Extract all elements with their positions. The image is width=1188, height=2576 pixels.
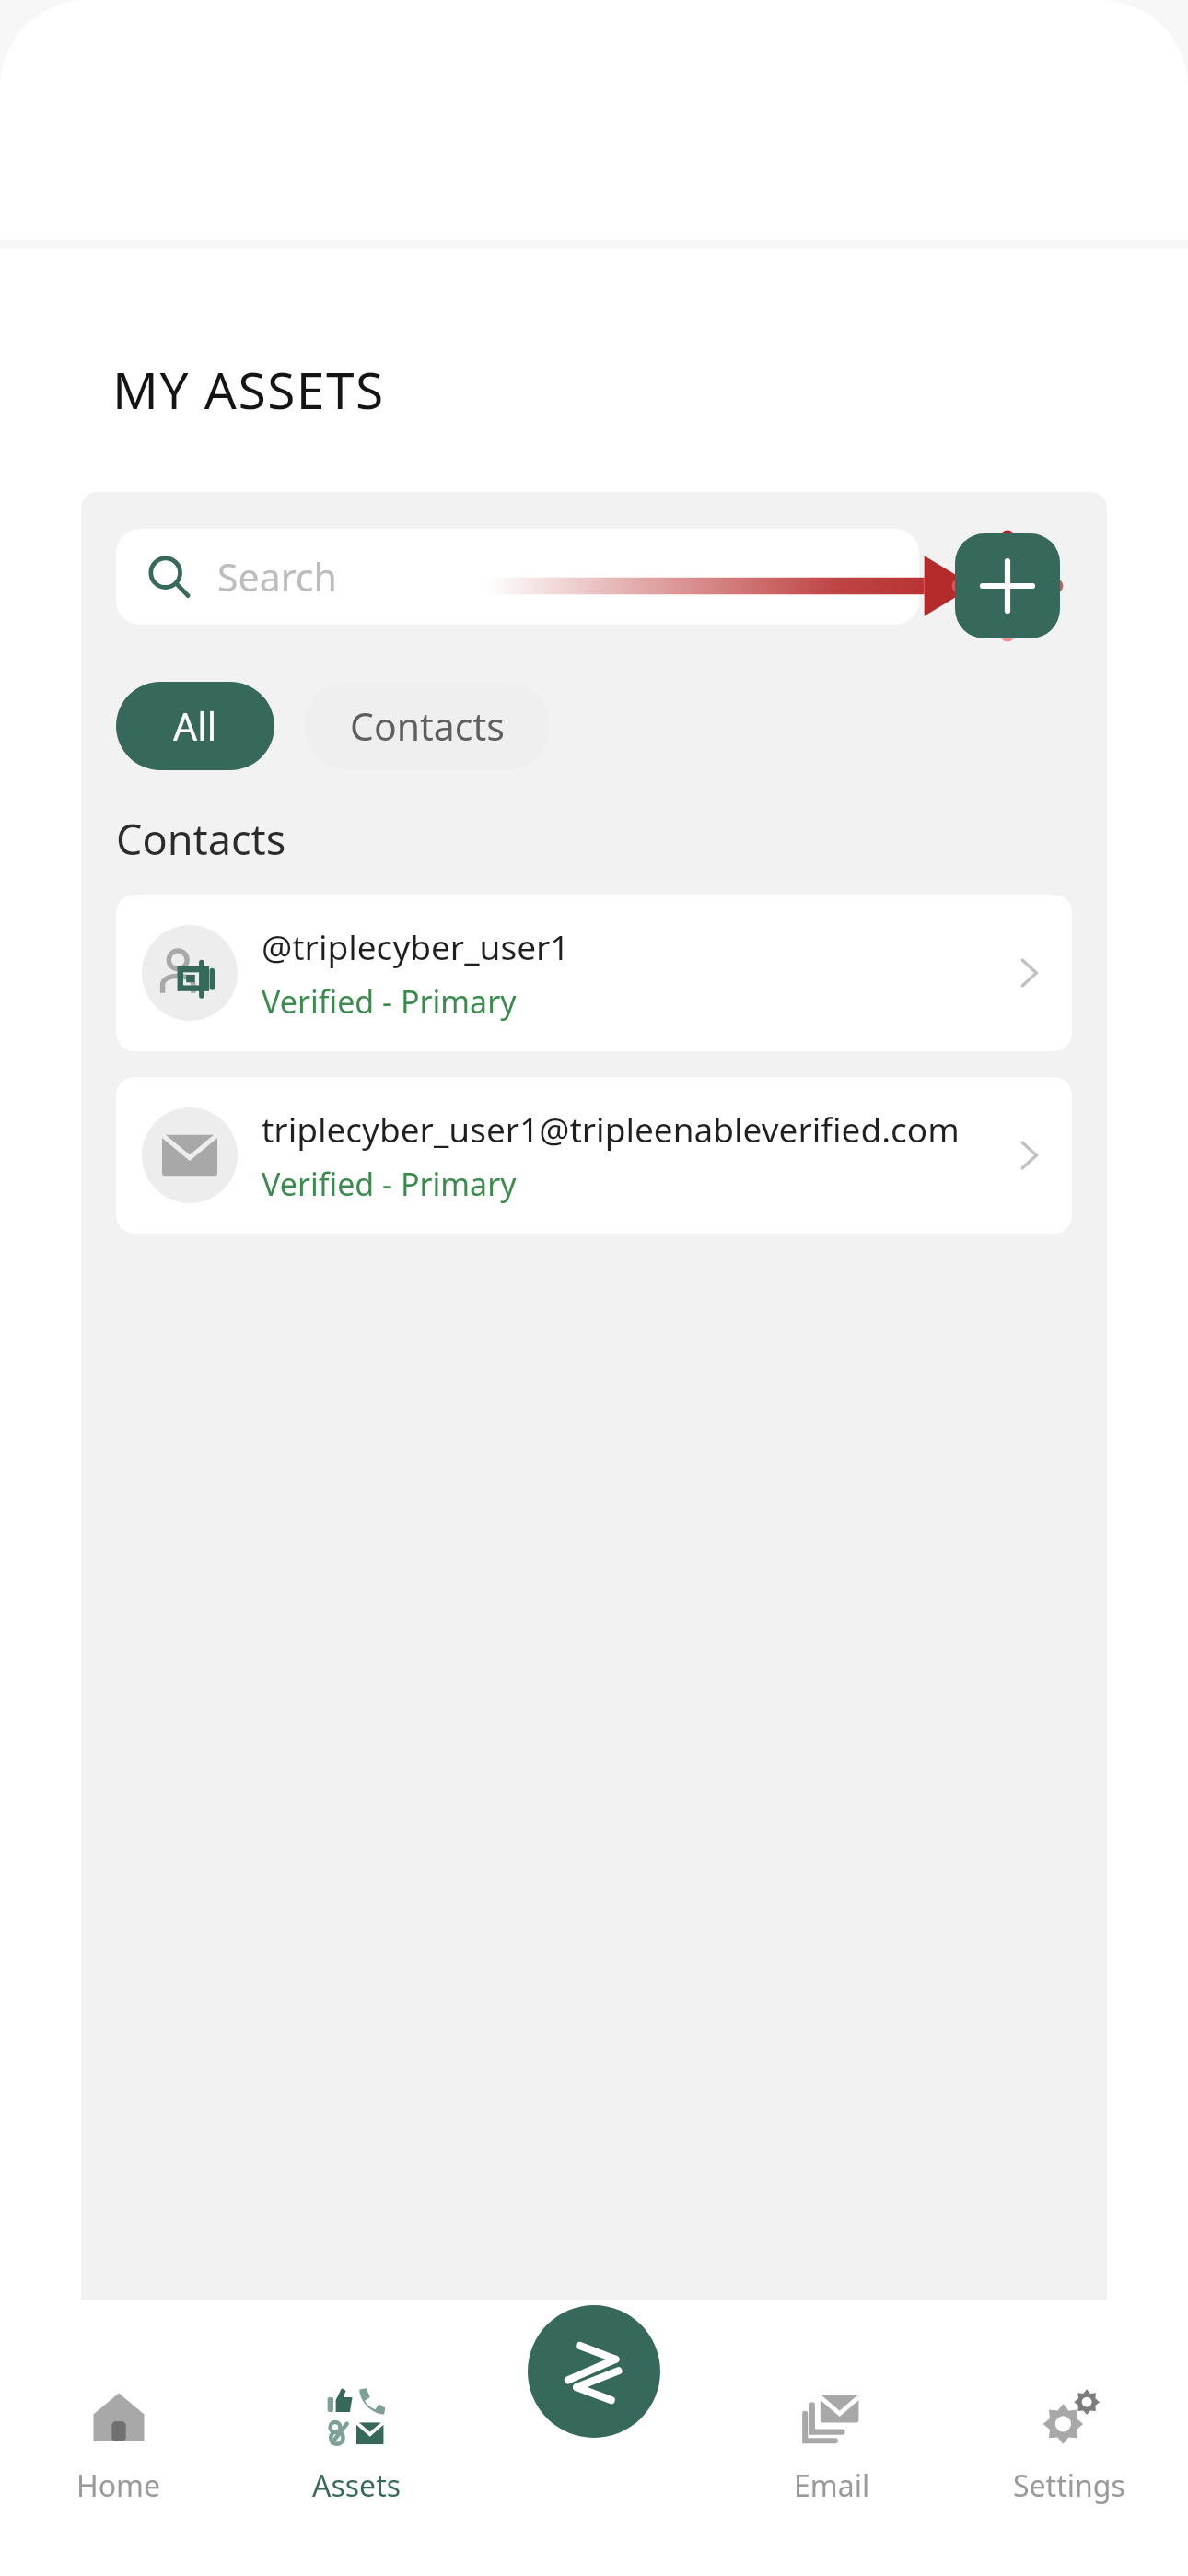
- button[interactable]: Contacts: [304, 682, 551, 770]
- button[interactable]: Add asset: [955, 533, 1060, 638]
- button[interactable]: Home: [0, 2375, 238, 2512]
- staticText: @triplecyber_user1: [262, 923, 570, 969]
- button[interactable]: Email: [713, 2375, 950, 2512]
- staticText: triplecyber_user1@tripleenableverified.c…: [262, 1106, 960, 1152]
- button[interactable]: triplecyber_user1@tripleenableverified.c…: [116, 1077, 1072, 1234]
- button[interactable]: @triplecyber_user1: [116, 895, 1072, 1051]
- staticText: Email: [794, 2465, 870, 2506]
- staticText: Search: [217, 551, 337, 603]
- staticText: Assets: [312, 2465, 402, 2506]
- staticText: Contacts: [116, 811, 286, 867]
- staticText: Verified - Primary: [262, 1163, 517, 1205]
- button[interactable]: Open dashboard: [528, 2305, 660, 2438]
- staticText: Contacts: [350, 700, 505, 752]
- staticText: Home: [76, 2465, 161, 2506]
- button[interactable]: Search: [116, 529, 919, 625]
- staticText: Verified - Primary: [262, 980, 517, 1023]
- staticText: Settings: [1013, 2465, 1125, 2506]
- button[interactable]: Settings: [950, 2375, 1188, 2512]
- staticText: MY ASSETS: [112, 355, 385, 424]
- staticText: All: [173, 700, 217, 752]
- button[interactable]: Assets: [238, 2375, 475, 2512]
- button[interactable]: All: [116, 682, 274, 770]
